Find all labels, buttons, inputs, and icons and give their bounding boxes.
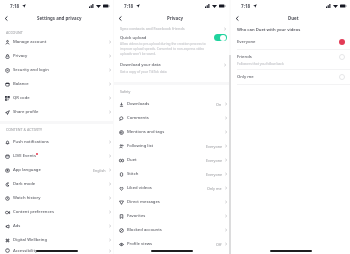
button[interactable]: Content preferences: [0, 205, 113, 219]
staticText: Safety: [120, 89, 131, 94]
button[interactable]: Mentions and tags: [114, 125, 229, 139]
staticText: Followers that you follow back: [237, 61, 284, 65]
staticText: Manage account: [13, 39, 47, 45]
staticText: On: [216, 102, 222, 107]
button[interactable]: App language: [0, 163, 113, 177]
button[interactable]: Following list: [114, 139, 229, 153]
button[interactable]: QR code: [0, 91, 113, 105]
button[interactable]: Favorites: [114, 209, 229, 223]
button[interactable]: Back: [0, 12, 12, 24]
button[interactable]: Privacy: [0, 49, 113, 63]
staticText: Only me: [237, 74, 254, 80]
staticText: Favorites: [127, 213, 146, 219]
staticText: 7:18: [10, 3, 20, 9]
staticText: Balance: [13, 81, 29, 87]
staticText: Share profile: [13, 109, 39, 115]
staticText: Off: [216, 242, 222, 247]
button[interactable]: Digital Wellbeing: [0, 233, 113, 247]
staticText: Accessibility: [13, 248, 38, 254]
button[interactable]: Manage account: [0, 35, 113, 49]
staticText: Who can Duet with your videos: [237, 27, 301, 33]
staticText: Watch history: [13, 195, 41, 201]
staticText: Privacy: [167, 15, 183, 21]
staticText: Allow videos to pre-upload during the cr…: [120, 42, 211, 55]
staticText: Everyone: [206, 158, 222, 163]
staticText: CONTENT & ACTIVITY: [6, 127, 43, 132]
button[interactable]: Accessibility: [0, 247, 113, 254]
staticText: Mentions and tags: [127, 129, 165, 135]
button[interactable]: Comments: [114, 111, 229, 125]
staticText: Digital Wellbeing: [13, 237, 48, 243]
staticText: Duet: [288, 15, 299, 21]
staticText: Security and login: [13, 67, 49, 73]
staticText: Everyone: [206, 172, 222, 177]
staticText: Everyone: [206, 144, 222, 149]
button[interactable]: Stitch: [114, 167, 229, 181]
staticText: Download your data: [120, 62, 161, 68]
staticText: Ads: [13, 223, 21, 229]
staticText: Blocked accounts: [127, 227, 162, 233]
button[interactable]: Everyone: [231, 35, 350, 49]
button[interactable]: Profile views: [114, 237, 229, 251]
staticText: Liked videos: [127, 185, 152, 191]
staticText: Dark mode: [13, 181, 36, 187]
staticText: Content preferences: [13, 209, 54, 215]
button[interactable]: Push notifications: [0, 135, 113, 149]
button[interactable]: Direct messages: [114, 195, 229, 209]
staticText: QR code: [13, 95, 30, 101]
staticText: Everyone: [237, 39, 256, 45]
button[interactable]: Downloads: [114, 97, 229, 111]
button[interactable]: Share profile: [0, 105, 113, 119]
staticText: Push notifications: [13, 139, 49, 145]
staticText: Stitch: [127, 171, 139, 177]
button[interactable]: Back: [114, 12, 126, 24]
staticText: Get a copy of your TikTok data: [120, 69, 167, 73]
button[interactable]: Dark mode: [0, 177, 113, 191]
button[interactable]: Quick upload toggle: [214, 34, 227, 41]
staticText: Direct messages: [127, 199, 160, 205]
staticText: Privacy: [13, 53, 28, 59]
staticText: English: [93, 168, 106, 173]
button[interactable]: Back: [231, 12, 243, 24]
button[interactable]: Sync contacts and Facebook friends: [114, 24, 229, 31]
button[interactable]: Security and login: [0, 63, 113, 77]
staticText: Comments: [127, 115, 149, 121]
staticText: 7:18: [124, 3, 134, 9]
staticText: Friends: [237, 54, 252, 60]
staticText: Sync contacts and Facebook friends: [120, 26, 185, 31]
button[interactable]: Quick upload: [114, 31, 229, 55]
staticText: Quick upload: [120, 35, 147, 41]
button[interactable]: Ads: [0, 219, 113, 233]
staticText: Downloads: [127, 101, 150, 107]
button[interactable]: Duet: [114, 153, 229, 167]
staticText: LIVE Events: [13, 153, 36, 159]
staticText: Only me: [207, 186, 222, 191]
staticText: 7:18: [241, 3, 251, 9]
staticText: Settings and privacy: [37, 15, 82, 21]
button[interactable]: Blocked accounts: [114, 223, 229, 237]
button[interactable]: LIVE Events: [0, 149, 113, 163]
staticText: Profile views: [127, 241, 153, 247]
button[interactable]: Download your data: [114, 62, 229, 73]
button[interactable]: Only me: [231, 70, 350, 84]
button[interactable]: Friends: [231, 50, 350, 69]
staticText: ACCOUNT: [6, 30, 23, 35]
staticText: Duet: [127, 157, 137, 163]
button[interactable]: Liked videos: [114, 181, 229, 195]
button[interactable]: Watch history: [0, 191, 113, 205]
staticText: Following list: [127, 143, 154, 149]
staticText: App language: [13, 167, 41, 173]
button[interactable]: Balance: [0, 77, 113, 91]
